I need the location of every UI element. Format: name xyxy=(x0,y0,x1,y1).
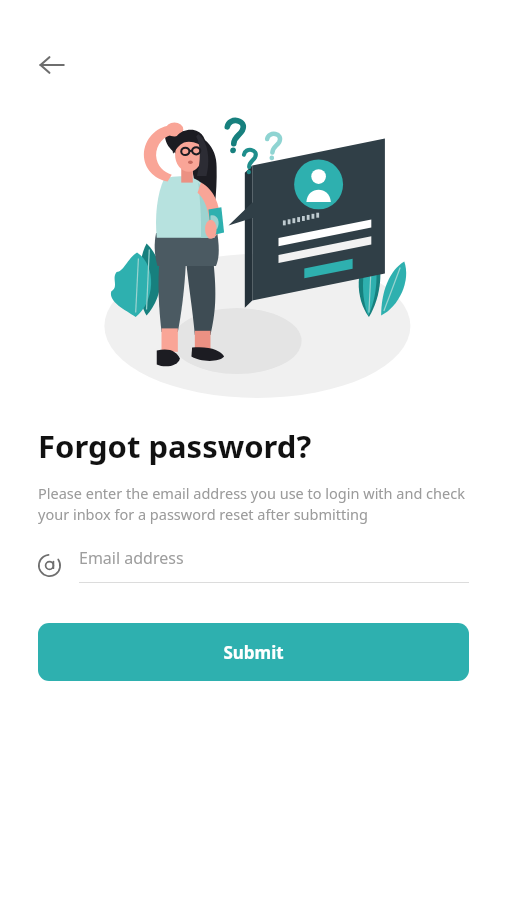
button[interactable]: Back xyxy=(28,41,76,89)
staticText: Forgot password? xyxy=(38,425,312,467)
staticText: Submit xyxy=(223,641,284,664)
staticText: Please enter the email address you use t… xyxy=(38,483,469,525)
button[interactable]: Email address xyxy=(38,547,469,583)
staticText: Email address xyxy=(79,547,184,569)
button[interactable]: Submit xyxy=(38,623,469,681)
